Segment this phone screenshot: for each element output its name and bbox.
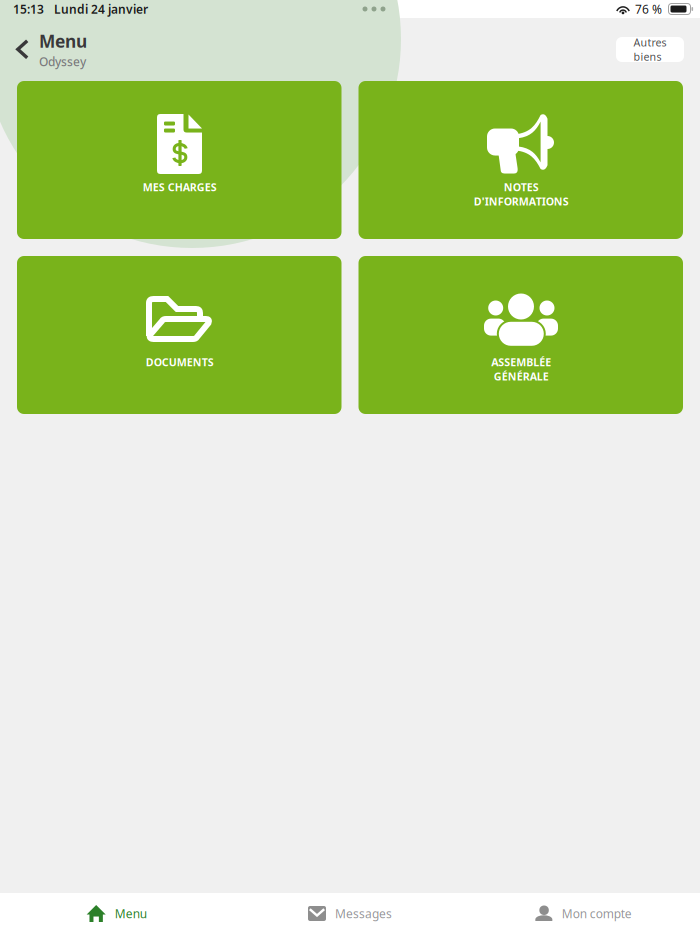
button[interactable]: NOTES D'INFORMATIONS	[358, 81, 683, 239]
staticText: NOTES D'INFORMATIONS	[473, 180, 568, 208]
staticText: Odyssey	[39, 53, 86, 69]
staticText: Messages	[335, 905, 392, 921]
button[interactable]: DOCUMENTS	[17, 256, 341, 414]
staticText: Mon compte	[562, 905, 632, 921]
staticText: MES CHARGES	[142, 180, 216, 194]
button[interactable]: Messages	[233, 893, 467, 934]
button[interactable]: Autres biens	[616, 37, 684, 62]
staticText: Lundi 24 janvier	[54, 1, 148, 17]
staticText: DOCUMENTS	[145, 355, 213, 369]
button[interactable]: ASSEMBLÉE GÉNÉRALE	[358, 256, 683, 414]
staticText: Autres biens	[633, 35, 666, 64]
staticText: 15:13	[13, 1, 44, 17]
staticText: Menu	[39, 29, 87, 52]
staticText: Menu	[115, 905, 147, 921]
button[interactable]: Menu	[16, 23, 87, 75]
button[interactable]: Menu	[0, 893, 233, 934]
staticText: ASSEMBLÉE GÉNÉRALE	[491, 355, 551, 383]
button[interactable]: Mon compte	[467, 893, 700, 934]
button[interactable]: MES CHARGES	[17, 81, 341, 239]
staticText: 76 %	[635, 1, 662, 17]
